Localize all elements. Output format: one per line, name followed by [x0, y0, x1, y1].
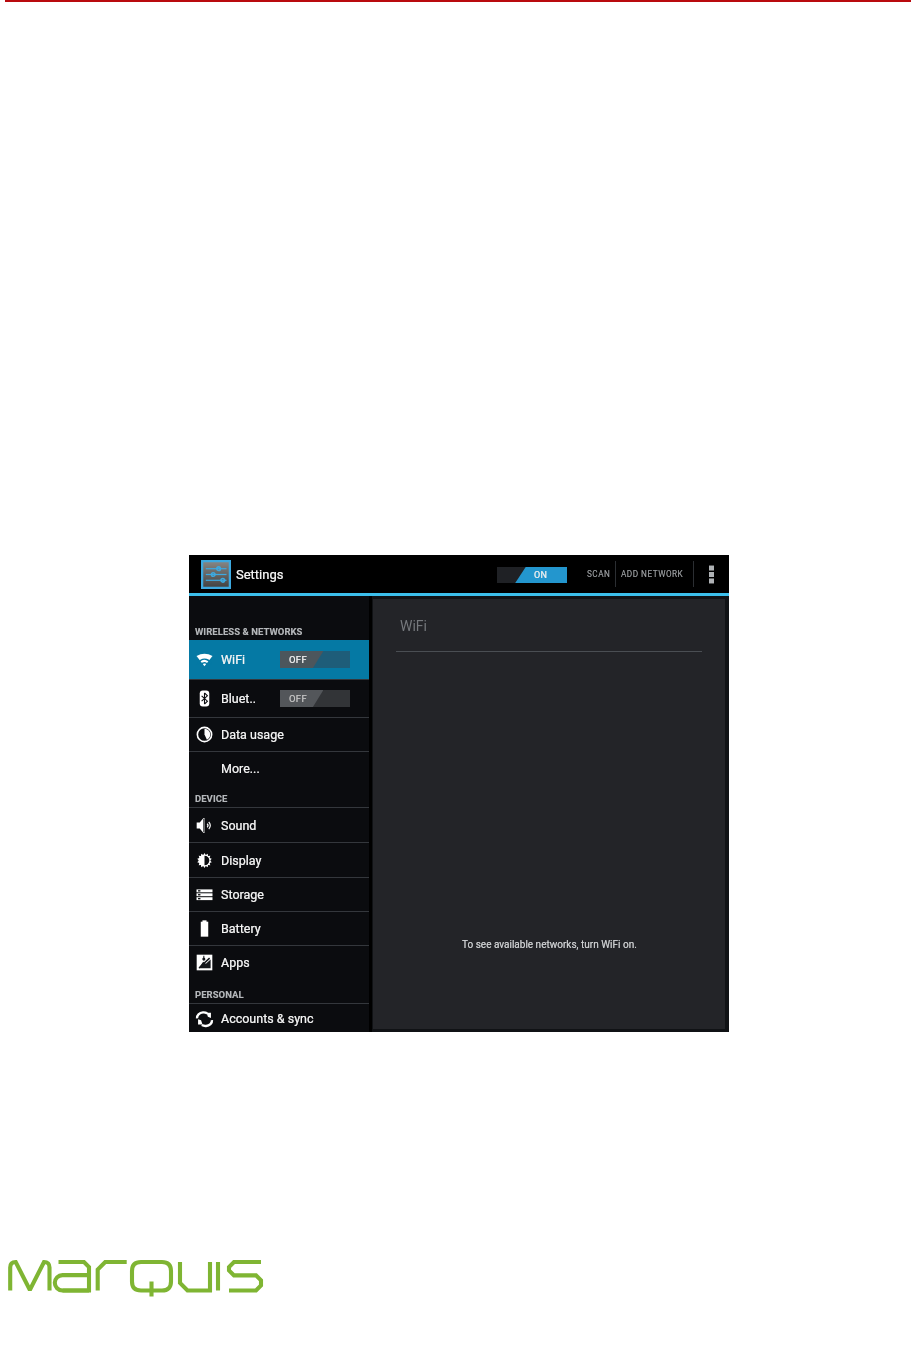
staticText: Bluet.. [221, 691, 257, 706]
staticText: Accounts & sync [221, 1011, 314, 1026]
staticText: WiFi [221, 652, 246, 667]
button[interactable]: Accounts & sync [189, 1004, 369, 1032]
staticText: Sound [221, 818, 257, 833]
staticText: Apps [221, 955, 250, 970]
button[interactable]: SCAN [587, 555, 611, 593]
staticText: SCAN [587, 569, 611, 579]
staticText: WIRELESS & NETWORKS [195, 626, 303, 637]
staticText: OFF [289, 654, 307, 665]
button[interactable]: Sound [189, 808, 369, 842]
button[interactable]: More... [189, 752, 369, 785]
staticText: OFF [289, 693, 307, 704]
other: marquis [1, 1253, 269, 1301]
button[interactable]: Battery [189, 912, 369, 945]
button[interactable]: More options [694, 555, 729, 593]
button[interactable]: WiFi [189, 640, 369, 679]
button[interactable]: Toggle off [280, 690, 350, 707]
staticText: WiFi [400, 618, 427, 634]
button[interactable]: Toggle off [280, 651, 350, 668]
button[interactable]: Bluet.. [189, 680, 369, 717]
button[interactable]: Storage [189, 878, 369, 911]
staticText: Display [221, 853, 262, 868]
button[interactable]: ADD NETWORK [621, 555, 684, 593]
staticText: DEVICE [195, 793, 228, 804]
button[interactable]: WiFi on [497, 567, 567, 583]
staticText: To see available networks, turn WiFi on. [462, 939, 637, 951]
button[interactable]: Settings [201, 555, 741, 593]
staticText: Storage [221, 887, 264, 902]
staticText: PERSONAL [195, 989, 244, 1000]
staticText: Battery [221, 921, 261, 936]
staticText: ADD NETWORK [621, 569, 684, 579]
button[interactable]: Data usage [189, 718, 369, 751]
staticText: Data usage [221, 727, 284, 742]
button[interactable]: Display [189, 843, 369, 877]
staticText: Settings [236, 567, 284, 582]
staticText: ON [534, 570, 548, 581]
staticText: More... [221, 761, 260, 776]
button[interactable]: Apps [189, 946, 369, 979]
